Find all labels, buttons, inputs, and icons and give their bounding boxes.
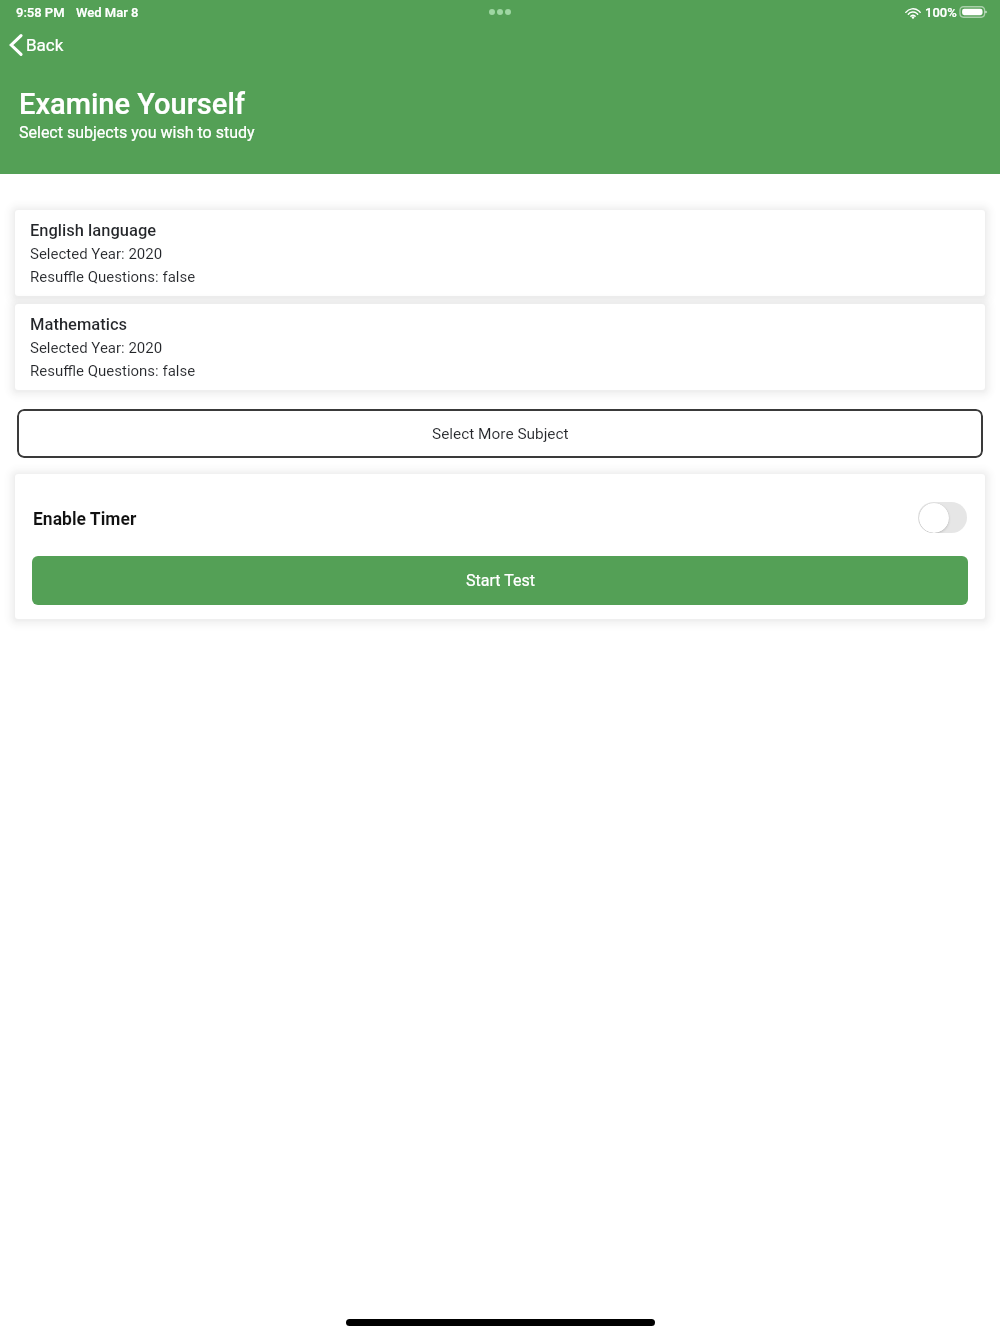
staticText: 100% — [925, 5, 957, 20]
staticText: Select More Subject — [432, 425, 569, 443]
staticText: Resuffle Questions: false — [30, 268, 196, 286]
staticText: Resuffle Questions: false — [30, 362, 196, 380]
staticText: Examine Yourself — [19, 87, 246, 121]
other: Dynamic island — [489, 9, 511, 15]
button[interactable]: Mathematics — [15, 304, 985, 390]
staticText: Select subjects you wish to study — [19, 123, 255, 142]
other: Back — [9, 34, 23, 56]
staticText: Wed Mar 8 — [76, 5, 139, 20]
staticText: Start Test — [466, 571, 535, 590]
button[interactable]: Select More Subject — [17, 409, 983, 458]
button[interactable]: Start Test — [32, 556, 968, 605]
staticText: English language — [30, 221, 157, 240]
staticText: 9:58 PM — [16, 5, 65, 20]
button[interactable]: English language — [15, 210, 985, 296]
staticText: Enable Timer — [33, 509, 137, 530]
staticText: Selected Year: 2020 — [30, 245, 163, 263]
staticText: Back — [26, 35, 64, 55]
staticText: Mathematics — [30, 315, 128, 334]
staticText: Selected Year: 2020 — [30, 339, 163, 357]
button[interactable]: Back — [9, 34, 64, 56]
button[interactable]: Enable Timer toggle — [918, 502, 967, 533]
